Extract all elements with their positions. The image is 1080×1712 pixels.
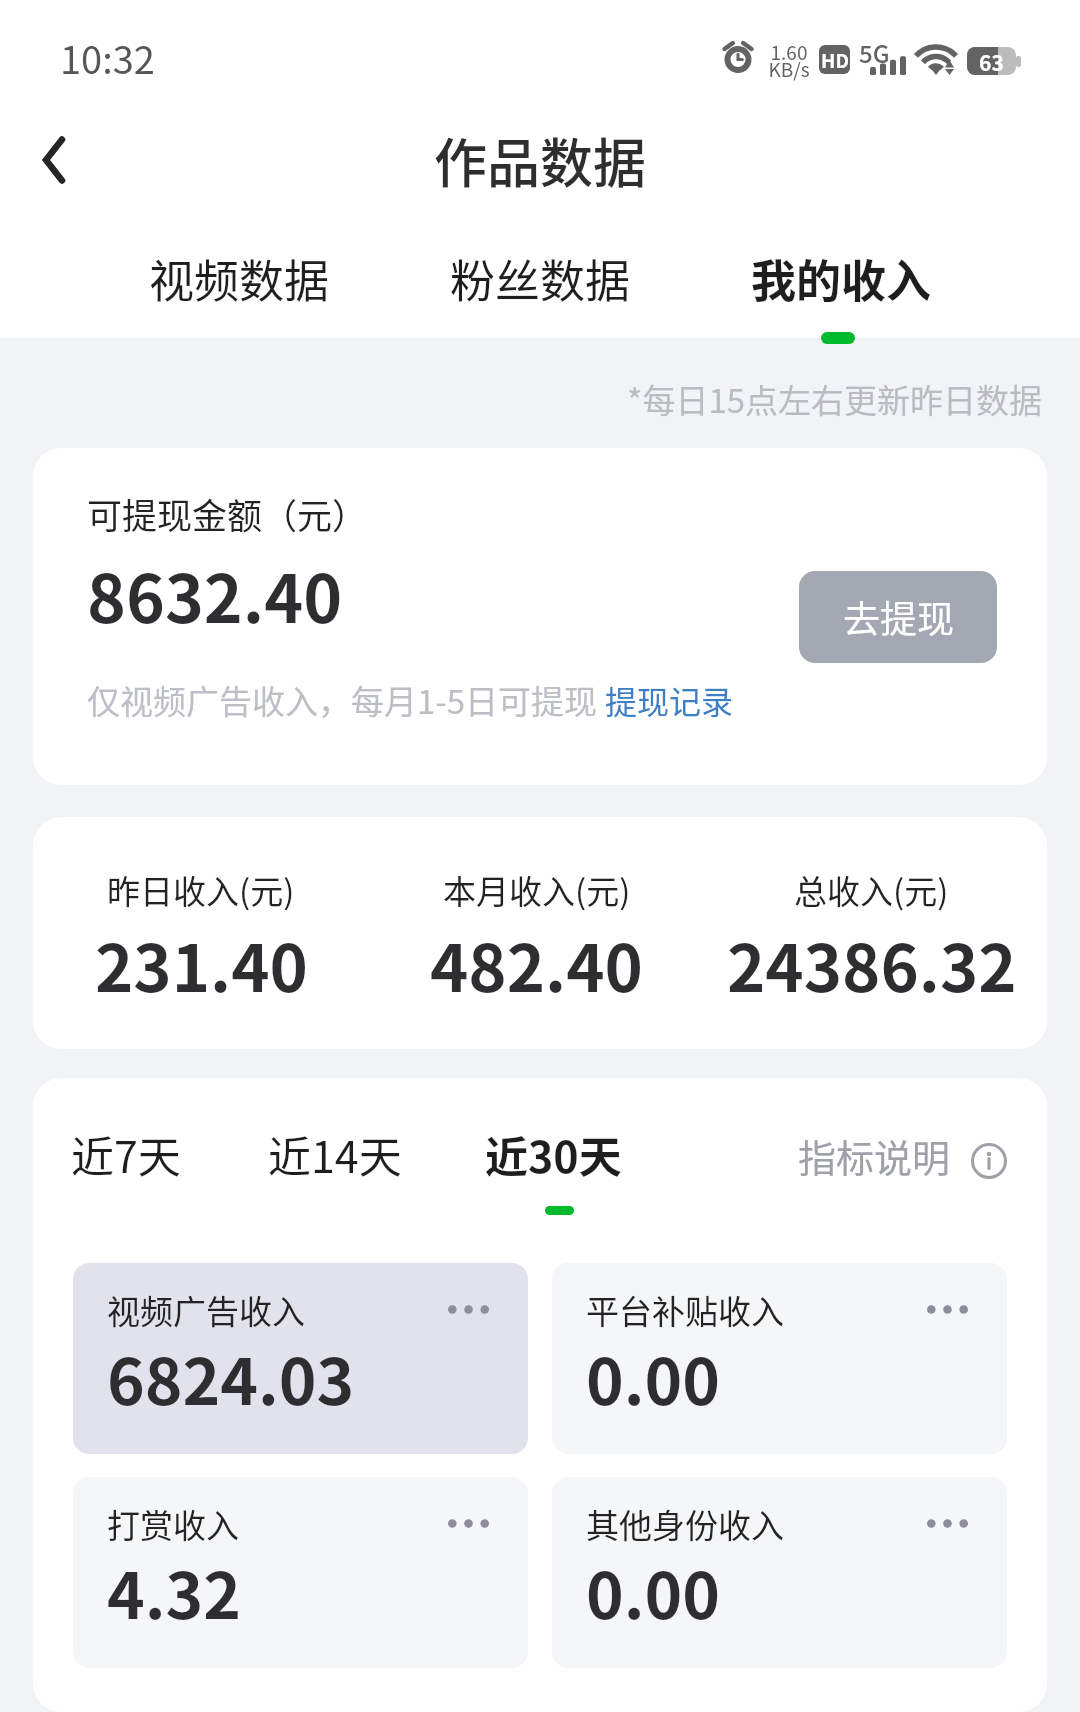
button[interactable]: 视频数据 (88, 218, 390, 344)
staticText: 5G (859, 35, 890, 70)
staticText: 其他身份收入 (586, 1500, 784, 1548)
staticText: 6824.03 (107, 1331, 355, 1424)
button[interactable]: 视频广告收入 (73, 1263, 528, 1454)
button[interactable]: 我的收入 (691, 218, 992, 344)
button[interactable]: 指标说明 (798, 1128, 1007, 1183)
staticText: 1.60 KB/s (768, 38, 810, 82)
staticText: 本月收入(元) (443, 866, 631, 914)
staticText: 可提现金额（元） (87, 488, 368, 539)
staticText: 4.32 (107, 1545, 242, 1638)
staticText: 我的收入 (751, 246, 932, 311)
staticText: 粉丝数据 (450, 246, 631, 311)
staticText: 0.00 (586, 1545, 721, 1638)
button[interactable]: 近30天 (485, 1123, 622, 1263)
staticText: 指标说明 (798, 1128, 951, 1183)
button[interactable]: 提现记录 (605, 677, 734, 723)
button[interactable]: 粉丝数据 (390, 218, 691, 344)
staticText: 63 (979, 47, 1004, 75)
staticText: 打赏收入 (107, 1500, 239, 1548)
button[interactable]: 近7天 (71, 1123, 181, 1263)
button[interactable]: 近14天 (268, 1123, 402, 1263)
staticText: 总收入(元) (794, 866, 949, 914)
staticText: 231.40 (95, 917, 308, 1011)
staticText: 仅视频广告收入，每月1-5日可提现 (87, 676, 605, 724)
button[interactable]: Back (12, 118, 96, 202)
staticText: 视频数据 (149, 246, 330, 311)
staticText: 0.00 (586, 1331, 721, 1424)
staticText: 作品数据 (434, 122, 646, 199)
staticText: 近30天 (485, 1123, 622, 1185)
staticText: 平台补贴收入 (586, 1286, 784, 1334)
staticText: 482.40 (430, 917, 643, 1011)
button[interactable]: 平台补贴收入 (552, 1263, 1007, 1454)
staticText: 近7天 (71, 1123, 181, 1185)
button[interactable]: 其他身份收入 (552, 1477, 1007, 1668)
staticText: 8632.40 (87, 546, 343, 642)
staticText: 近14天 (268, 1123, 402, 1185)
button[interactable]: 打赏收入 (73, 1477, 528, 1668)
staticText: 昨日收入(元) (107, 866, 295, 914)
button[interactable]: 去提现 (799, 571, 997, 663)
staticText: 去提现 (843, 590, 954, 644)
staticText: 视频广告收入 (107, 1286, 305, 1334)
staticText: HD (821, 46, 849, 74)
staticText: 10:32 (60, 30, 155, 85)
staticText: *每日15点左右更新昨日数据 (627, 375, 1043, 423)
staticText: 24386.32 (727, 917, 1017, 1011)
